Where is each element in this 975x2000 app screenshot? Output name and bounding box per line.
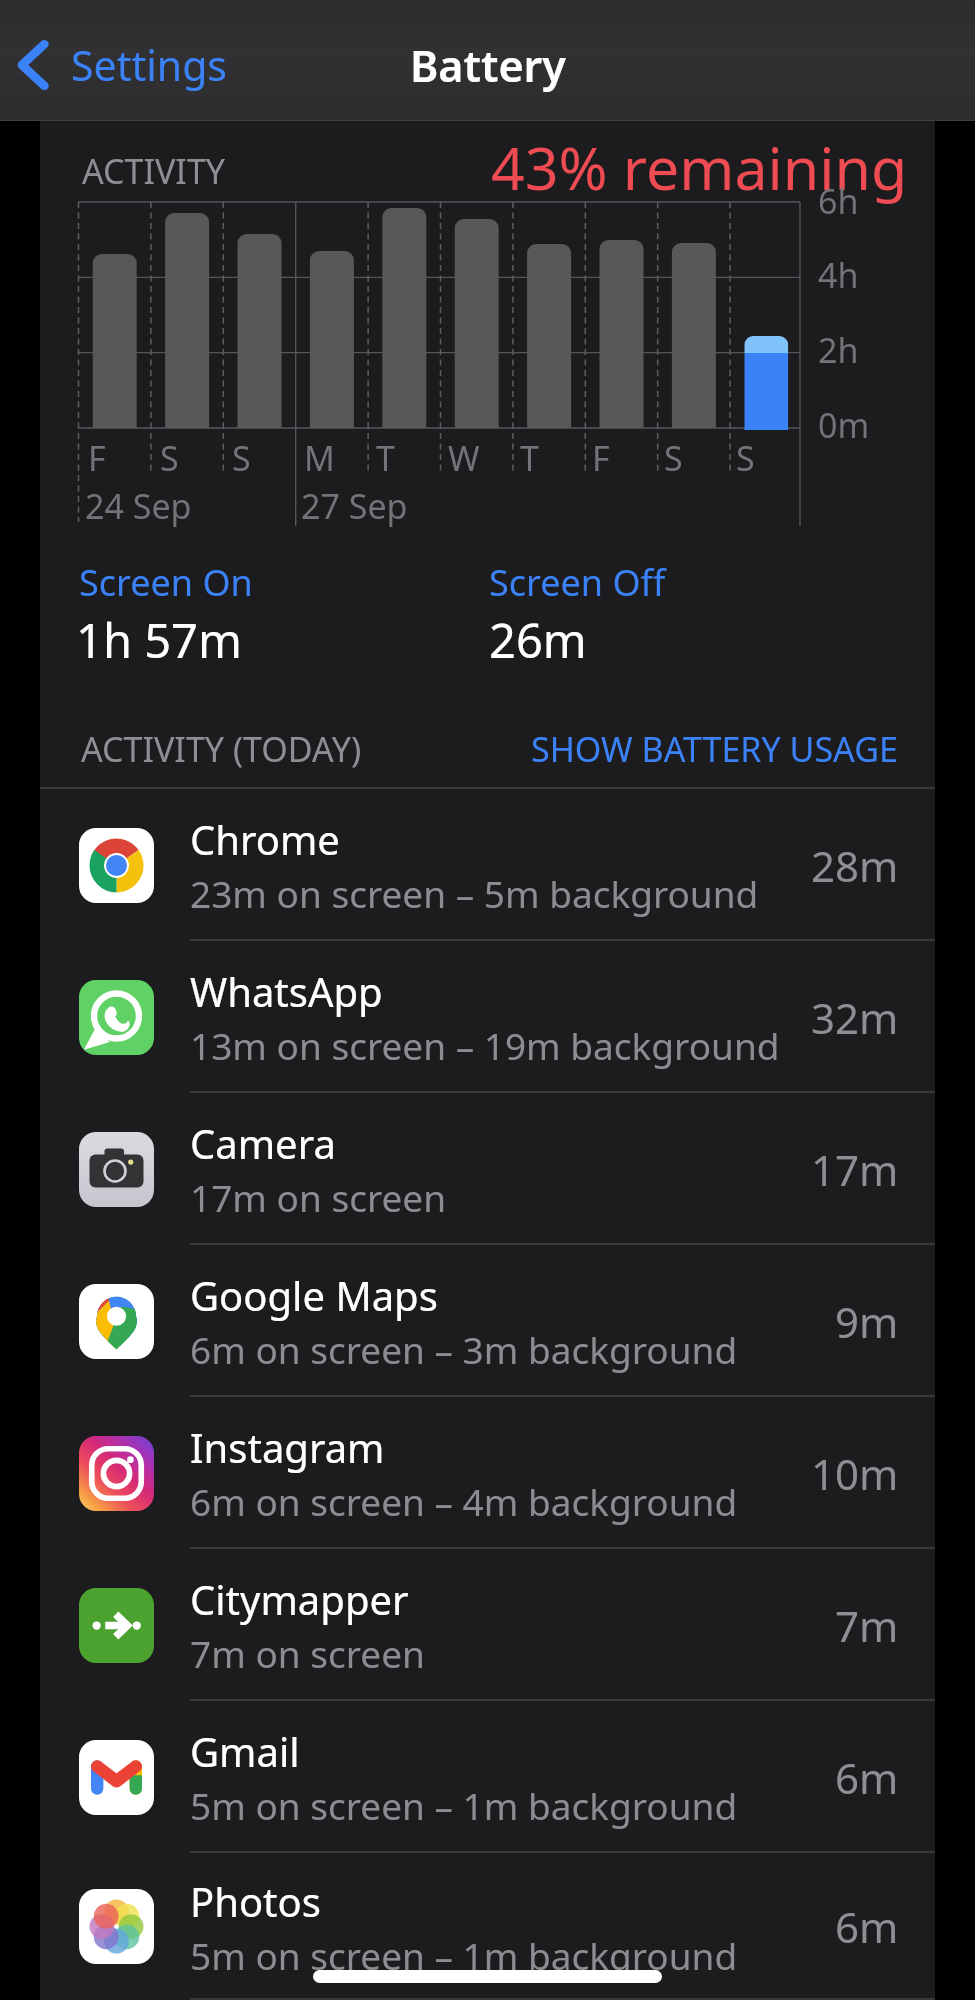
staticText: S [664, 435, 683, 481]
staticText: 13m on screen – 19m background [190, 1020, 780, 1070]
button[interactable]: SHOW BATTERY USAGE [525, 720, 904, 778]
staticText: 6m [835, 1898, 899, 1955]
button[interactable]: Photos [40, 1853, 935, 2000]
staticText: 26m [489, 608, 587, 672]
staticText: T [376, 435, 395, 481]
staticText: 1h 57m [76, 608, 242, 672]
staticText: Camera [190, 1116, 336, 1170]
staticText: 43% remaining [491, 127, 908, 207]
staticText: 27 Sep [301, 483, 408, 529]
staticText: 17m on screen [190, 1172, 447, 1222]
staticText: Photos [190, 1874, 321, 1928]
staticText: 23m on screen – 5m background [190, 868, 759, 918]
staticText: 5m on screen – 1m background [190, 1930, 738, 1980]
staticText: 6h [818, 178, 859, 224]
staticText: Settings [71, 37, 228, 93]
staticText: 10m [811, 1445, 899, 1502]
staticText: 7m on screen [190, 1628, 425, 1678]
staticText: F [88, 435, 106, 481]
button[interactable]: WhatsApp [40, 941, 935, 1093]
button[interactable]: Gmail [40, 1701, 935, 1853]
staticText: Citymapper [190, 1572, 409, 1626]
staticText: W [448, 435, 480, 481]
button[interactable]: Chrome [40, 789, 935, 941]
staticText: 32m [811, 989, 899, 1046]
staticText: ACTIVITY (TODAY) [81, 726, 362, 772]
button[interactable]: Settings [0, 29, 238, 101]
button[interactable]: Google Maps [40, 1245, 935, 1397]
staticText: WhatsApp [190, 964, 383, 1018]
button[interactable]: Instagram [40, 1397, 935, 1549]
staticText: SHOW BATTERY USAGE [531, 726, 898, 772]
staticText: Instagram [190, 1420, 385, 1474]
staticText: 6m on screen – 3m background [190, 1324, 738, 1374]
staticText: 0m [818, 402, 870, 448]
button[interactable]: Citymapper [40, 1549, 935, 1701]
staticText: 24 Sep [85, 483, 192, 529]
staticText: 6m [835, 1749, 899, 1806]
staticText: S [232, 435, 251, 481]
staticText: 5m on screen – 1m background [190, 1780, 738, 1830]
button[interactable]: Camera [40, 1093, 935, 1245]
staticText: F [592, 435, 610, 481]
staticText: S [736, 435, 755, 481]
staticText: Google Maps [190, 1268, 438, 1322]
staticText: Gmail [190, 1724, 300, 1778]
staticText: 2h [818, 327, 859, 373]
staticText: T [520, 435, 539, 481]
staticText: 17m [811, 1141, 899, 1198]
staticText: 6m on screen – 4m background [190, 1476, 738, 1526]
staticText: 9m [835, 1293, 899, 1350]
staticText: M [304, 435, 335, 481]
staticText: Chrome [190, 812, 340, 866]
staticText: Battery [410, 36, 566, 95]
staticText: 7m [835, 1597, 899, 1654]
staticText: 28m [811, 837, 899, 894]
staticText: S [160, 435, 179, 481]
staticText: 4h [818, 252, 859, 298]
staticText: Screen Off [489, 558, 666, 607]
staticText: ACTIVITY [82, 148, 226, 194]
staticText: Screen On [79, 558, 253, 607]
